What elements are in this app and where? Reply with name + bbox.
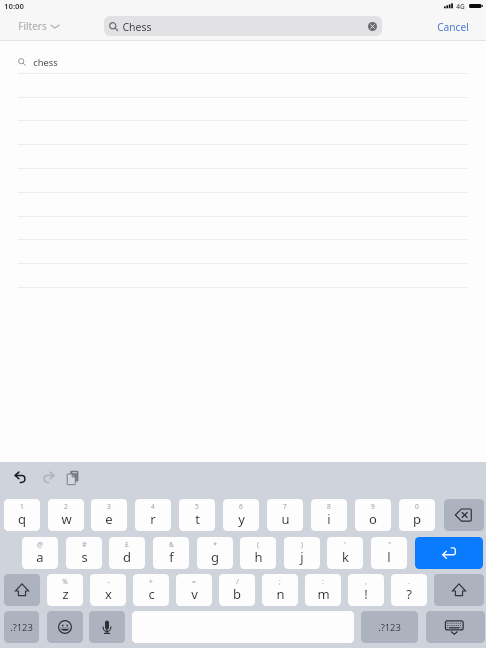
staticText: p: [413, 510, 421, 528]
staticText: l: [387, 548, 391, 566]
button[interactable]: Chess: [104, 16, 382, 36]
button[interactable]: 5: [179, 499, 215, 531]
button[interactable]: Clear text: [368, 22, 377, 31]
button[interactable]: Hide keyboard: [426, 611, 485, 643]
button[interactable]: #: [66, 537, 102, 569]
staticText: -: [107, 577, 110, 586]
button[interactable]: Redo: [39, 468, 57, 486]
staticText: .?123: [10, 621, 33, 634]
staticText: :: [322, 577, 324, 586]
button[interactable]: ,: [348, 574, 384, 606]
staticText: .: [408, 577, 410, 586]
staticText: s: [81, 548, 88, 566]
staticText: !: [364, 585, 368, 603]
button[interactable]: 0: [399, 499, 435, 531]
button[interactable]: =: [176, 574, 212, 606]
staticText: ): [301, 540, 303, 549]
staticText: chess: [33, 56, 58, 69]
staticText: q: [18, 510, 26, 528]
button[interactable]: 7: [267, 499, 303, 531]
button[interactable]: 6: [223, 499, 259, 531]
button[interactable]: *: [197, 537, 233, 569]
button[interactable]: -: [90, 574, 126, 606]
staticText: o: [369, 510, 377, 528]
button[interactable]: +: [133, 574, 169, 606]
staticText: /: [236, 577, 239, 586]
button[interactable]: 4: [135, 499, 171, 531]
button[interactable]: ": [371, 537, 407, 569]
button[interactable]: ': [327, 537, 363, 569]
button[interactable]: 3: [91, 499, 127, 531]
staticText: =: [192, 577, 196, 586]
staticText: (: [257, 540, 259, 549]
staticText: c: [148, 585, 155, 603]
staticText: ': [344, 540, 346, 549]
button[interactable]: Dictate: [89, 611, 125, 643]
button[interactable]: chess: [18, 51, 468, 73]
staticText: a: [36, 548, 44, 566]
staticText: 7: [283, 502, 287, 511]
button[interactable]: Filters: [18, 19, 59, 33]
staticText: 2: [64, 502, 68, 511]
button[interactable]: Emoji: [47, 611, 83, 643]
button[interactable]: /: [219, 574, 255, 606]
staticText: m: [317, 585, 330, 603]
staticText: e: [105, 510, 113, 528]
button[interactable]: .?123: [4, 611, 39, 643]
staticText: 10:00: [4, 1, 24, 12]
staticText: b: [233, 585, 241, 603]
button[interactable]: %: [47, 574, 83, 606]
button[interactable]: :: [305, 574, 341, 606]
button[interactable]: ;: [262, 574, 298, 606]
staticText: w: [61, 510, 72, 528]
button[interactable]: 8: [311, 499, 347, 531]
staticText: t: [195, 510, 200, 528]
staticText: y: [238, 510, 245, 528]
staticText: &: [169, 540, 174, 549]
button[interactable]: Undo: [12, 468, 30, 486]
button[interactable]: @: [22, 537, 58, 569]
staticText: Chess: [122, 20, 152, 34]
staticText: *: [213, 540, 217, 549]
button[interactable]: .?123: [361, 611, 418, 643]
staticText: u: [281, 510, 290, 528]
staticText: h: [254, 548, 263, 566]
staticText: @: [37, 540, 43, 549]
staticText: z: [62, 585, 69, 603]
staticText: j: [300, 548, 304, 566]
button[interactable]: &: [153, 537, 189, 569]
button[interactable]: Return: [415, 537, 483, 569]
button[interactable]: 9: [355, 499, 391, 531]
staticText: i: [327, 510, 331, 528]
button[interactable]: Backspace: [444, 499, 484, 531]
staticText: 9: [371, 502, 375, 511]
staticText: k: [342, 548, 349, 566]
staticText: r: [150, 510, 156, 528]
staticText: g: [211, 548, 219, 566]
staticText: ": [388, 540, 391, 549]
button[interactable]: Cancel: [437, 20, 469, 34]
staticText: 6: [239, 502, 243, 511]
staticText: Filters: [18, 19, 47, 33]
staticText: #: [82, 540, 87, 549]
staticText: 4: [151, 502, 155, 511]
staticText: v: [191, 585, 198, 603]
staticText: ?: [406, 585, 412, 603]
staticText: 5: [195, 502, 199, 511]
staticText: n: [276, 585, 285, 603]
staticText: x: [105, 585, 112, 603]
button[interactable]: Shift: [434, 574, 484, 606]
staticText: 3: [107, 502, 111, 511]
button[interactable]: Paste: [64, 467, 84, 487]
staticText: +: [149, 577, 153, 586]
button[interactable]: £: [109, 537, 145, 569]
button[interactable]: Shift: [4, 574, 40, 606]
button[interactable]: 2: [48, 499, 84, 531]
staticText: f: [169, 548, 174, 566]
staticText: d: [123, 548, 131, 566]
button[interactable]: (: [240, 537, 276, 569]
button[interactable]: .: [391, 574, 427, 606]
button[interactable]: ): [284, 537, 320, 569]
button[interactable]: 1: [4, 499, 40, 531]
